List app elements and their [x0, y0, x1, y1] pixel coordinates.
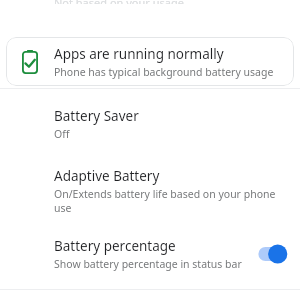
staticText: Show battery percentage in status bar	[54, 257, 242, 271]
staticText: Battery Saver	[54, 107, 139, 125]
staticText: Apps are running normally	[54, 45, 224, 63]
button[interactable]: Battery percentage toggle, on	[252, 241, 292, 267]
button[interactable]: Battery status normal	[6, 37, 294, 86]
staticText: Battery percentage	[54, 237, 176, 255]
button[interactable]: Adaptive Battery	[0, 159, 300, 227]
staticText: Off	[54, 127, 70, 141]
button[interactable]: Battery Saver	[0, 89, 300, 159]
button[interactable]: Battery percentage	[0, 227, 300, 283]
staticText: Phone has typical background battery usa…	[54, 65, 274, 79]
other: Battery status normal	[22, 50, 38, 74]
staticText: Not based on your usage	[54, 0, 184, 4]
staticText: Adaptive Battery	[54, 167, 160, 185]
staticText: On/Extends battery life based on your ph…	[54, 187, 276, 215]
